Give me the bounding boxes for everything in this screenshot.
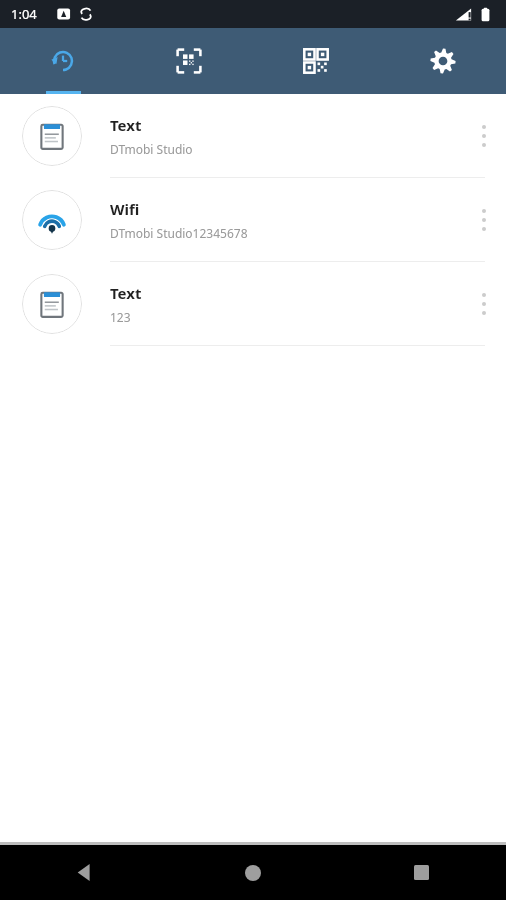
- button[interactable]: History: [0, 28, 126, 94]
- button[interactable]: Back: [0, 845, 168, 900]
- staticText: DTmobi Studio12345678: [110, 225, 248, 241]
- staticText: 123: [110, 309, 131, 325]
- button[interactable]: Wifi: [0, 178, 506, 262]
- button[interactable]: More options: [462, 94, 506, 177]
- staticText: Text: [110, 283, 142, 303]
- button[interactable]: Text: [0, 262, 506, 346]
- staticText: Wifi: [110, 199, 140, 219]
- button[interactable]: More options: [462, 178, 506, 261]
- staticText: DTmobi Studio: [110, 141, 193, 157]
- button[interactable]: Text: [0, 94, 506, 178]
- button[interactable]: Home: [168, 845, 337, 900]
- staticText: Text: [110, 115, 142, 135]
- button[interactable]: Create QR code: [252, 28, 379, 94]
- staticText: 1:04: [11, 5, 37, 23]
- button[interactable]: Settings: [379, 28, 506, 94]
- button[interactable]: Scan QR code: [126, 28, 252, 94]
- button[interactable]: More options: [462, 262, 506, 345]
- button[interactable]: Recent apps: [337, 845, 506, 900]
